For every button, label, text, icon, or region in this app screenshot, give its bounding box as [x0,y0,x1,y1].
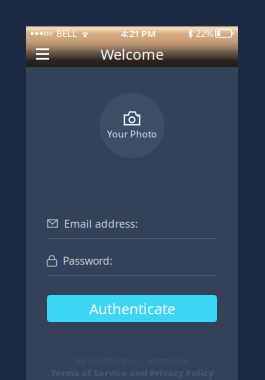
staticText: By registering, I accept the [75,354,188,367]
staticText: BELL [56,27,77,40]
staticText: Email address: [64,216,138,231]
button[interactable]: Menu [36,41,66,67]
button[interactable]: Authenticate [47,295,217,322]
staticText: Your Photo [107,128,157,140]
button[interactable]: Terms of Service and Privacy Policy [50,367,213,379]
staticText: Password: [63,253,113,268]
staticText: Welcome [100,44,163,64]
staticText: Terms of Service and Privacy Policy [50,367,213,379]
button[interactable]: Your Photo [99,93,164,158]
staticText: 4:21 PM [121,27,156,40]
staticText: Authenticate [89,299,175,318]
staticText: 22% [196,27,214,40]
